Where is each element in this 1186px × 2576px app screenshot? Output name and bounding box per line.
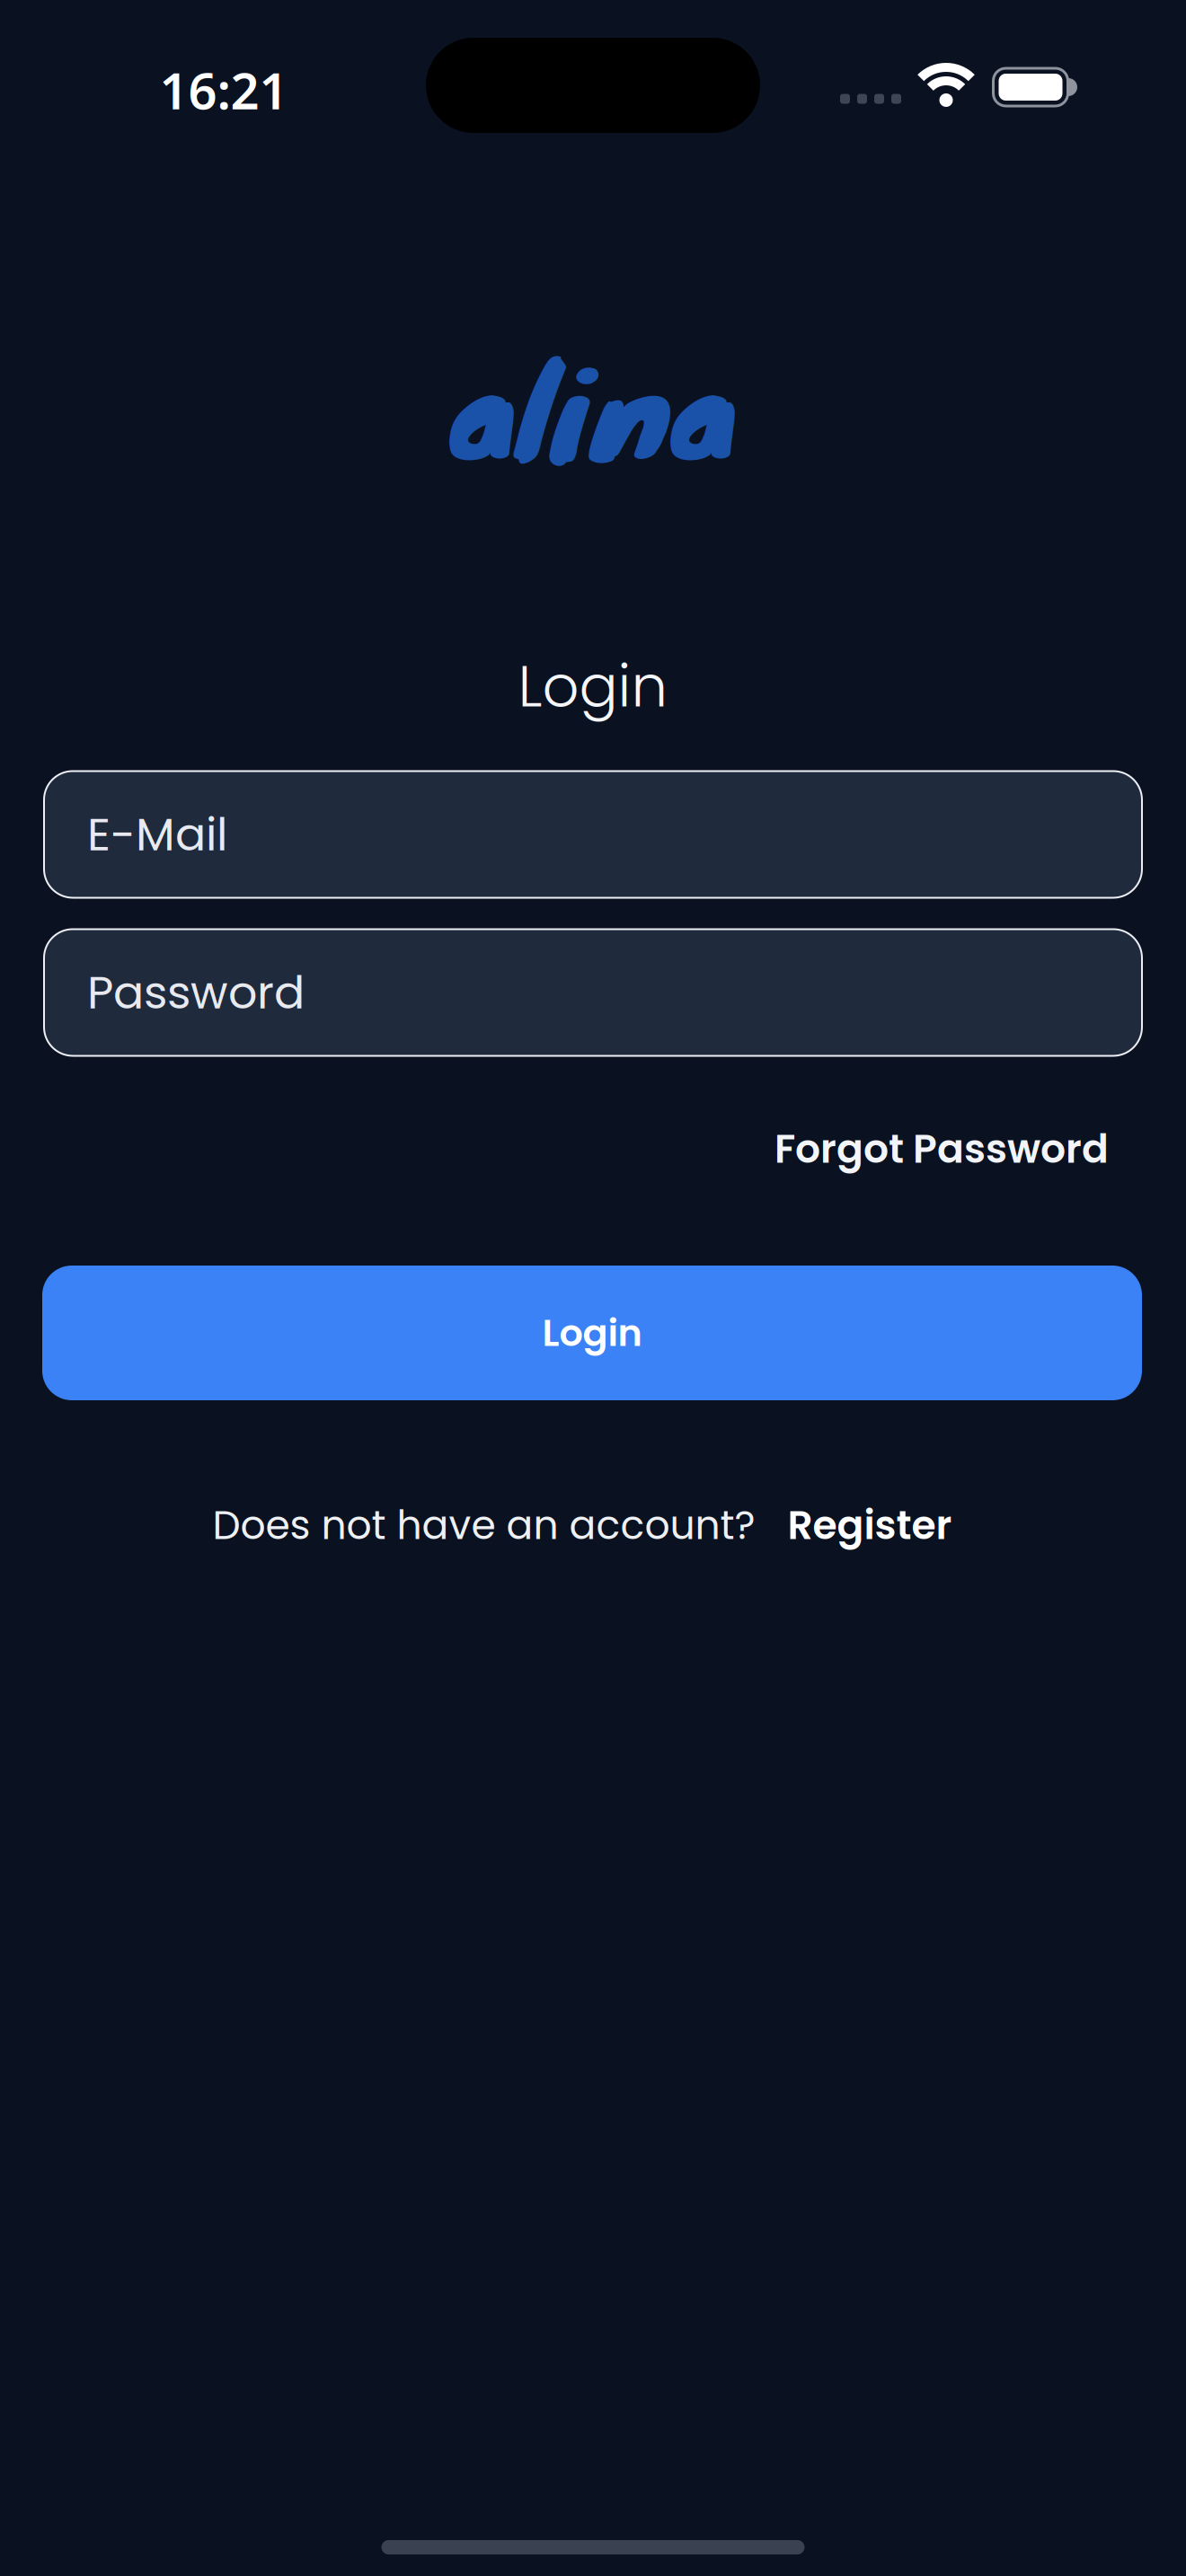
staticText: alina [450, 312, 736, 502]
staticText: E-Mail [87, 803, 227, 866]
button[interactable]: Register [788, 1497, 952, 1553]
button[interactable]: Password [44, 929, 1142, 1056]
staticText: Login [518, 646, 668, 726]
button[interactable]: Forgot Password [774, 1121, 1109, 1176]
staticText: Login [542, 1307, 642, 1359]
staticText: 16:21 [159, 56, 288, 123]
staticText: Password [87, 961, 305, 1024]
staticText: Does not have an account? [212, 1497, 755, 1553]
button[interactable]: E-Mail [44, 771, 1142, 898]
staticText: Forgot Password [774, 1121, 1109, 1176]
button[interactable]: Login [42, 1266, 1142, 1400]
staticText: Register [788, 1497, 952, 1553]
